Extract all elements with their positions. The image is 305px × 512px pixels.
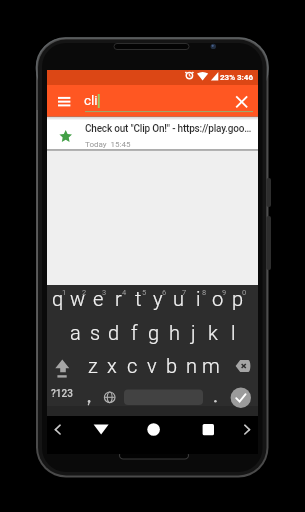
button[interactable]: d: [104, 317, 124, 347]
staticText: g: [148, 321, 160, 344]
button[interactable]: q: [48, 283, 68, 313]
staticText: ?123: [51, 388, 73, 400]
staticText: 23%: [220, 73, 236, 82]
button[interactable]: c: [122, 350, 142, 380]
staticText: h: [169, 321, 180, 344]
button[interactable]: b: [162, 350, 182, 380]
staticText: f: [131, 321, 138, 344]
staticText: 1: [62, 288, 67, 297]
button[interactable]: [52, 89, 77, 113]
button[interactable]: w: [68, 283, 88, 313]
staticText: z: [88, 354, 98, 377]
staticText: 3: [102, 288, 107, 297]
staticText: l: [231, 321, 236, 344]
staticText: x: [107, 354, 117, 377]
staticText: 4: [122, 288, 127, 297]
button[interactable]: p: [228, 283, 248, 313]
button[interactable]: g: [144, 317, 164, 347]
staticText: c: [127, 354, 138, 377]
staticText: j: [191, 321, 196, 344]
staticText: n: [186, 354, 197, 377]
staticText: d: [108, 321, 120, 344]
staticText: q: [52, 287, 64, 310]
button[interactable]: [141, 419, 167, 440]
button[interactable]: f: [124, 317, 144, 347]
staticText: k: [208, 321, 218, 344]
staticText: 9: [222, 288, 227, 297]
button[interactable]: i: [188, 283, 208, 313]
button[interactable]: [196, 419, 222, 440]
button[interactable]: m: [201, 350, 221, 380]
staticText: b: [166, 354, 178, 377]
staticText: y: [153, 287, 163, 310]
staticText: r: [115, 287, 122, 310]
staticText: s: [90, 321, 101, 344]
staticText: v: [147, 354, 157, 377]
button[interactable]: r: [108, 283, 128, 313]
button[interactable]: [230, 387, 251, 408]
staticText: Check out "Clip On!" - https://play.goog…: [85, 123, 255, 135]
staticText: p: [232, 287, 244, 310]
staticText: 7: [182, 288, 187, 297]
button[interactable]: [88, 419, 114, 440]
button[interactable]: [124, 389, 203, 405]
button[interactable]: n: [181, 350, 201, 380]
staticText: 5: [142, 288, 147, 297]
button[interactable]: e: [88, 283, 108, 313]
button[interactable]: j: [183, 317, 203, 347]
button[interactable]: [100, 387, 120, 407]
button[interactable]: x: [102, 350, 122, 380]
staticText: 3:46: [237, 73, 254, 82]
staticText: cli: [84, 92, 98, 108]
staticText: e: [93, 287, 104, 310]
button[interactable]: l: [223, 317, 243, 347]
staticText: w: [70, 287, 86, 310]
button[interactable]: y: [148, 283, 168, 313]
staticText: u: [173, 287, 184, 310]
button[interactable]: u: [168, 283, 188, 313]
button[interactable]: v: [142, 350, 162, 380]
button[interactable]: [52, 356, 74, 380]
staticText: 0: [242, 288, 247, 297]
button[interactable]: z: [83, 350, 103, 380]
staticText: Today 15:45: [85, 140, 131, 149]
button[interactable]: Check out "Clip On!" - https://play.goog…: [47, 117, 258, 150]
button[interactable]: t: [128, 283, 148, 313]
button[interactable]: a: [65, 317, 85, 347]
button[interactable]: o: [208, 283, 228, 313]
staticText: m: [202, 354, 220, 377]
button[interactable]: s: [85, 317, 105, 347]
staticText: 8: [202, 288, 207, 297]
staticText: o: [212, 287, 224, 310]
staticText: i: [196, 287, 201, 310]
staticText: 6: [162, 288, 167, 297]
button[interactable]: k: [203, 317, 223, 347]
staticText: 2: [82, 288, 87, 297]
button[interactable]: h: [164, 317, 184, 347]
staticText: a: [70, 321, 81, 344]
button[interactable]: ?123: [49, 385, 75, 403]
button[interactable]: [232, 356, 254, 378]
staticText: t: [135, 287, 142, 310]
button[interactable]: [229, 89, 253, 113]
